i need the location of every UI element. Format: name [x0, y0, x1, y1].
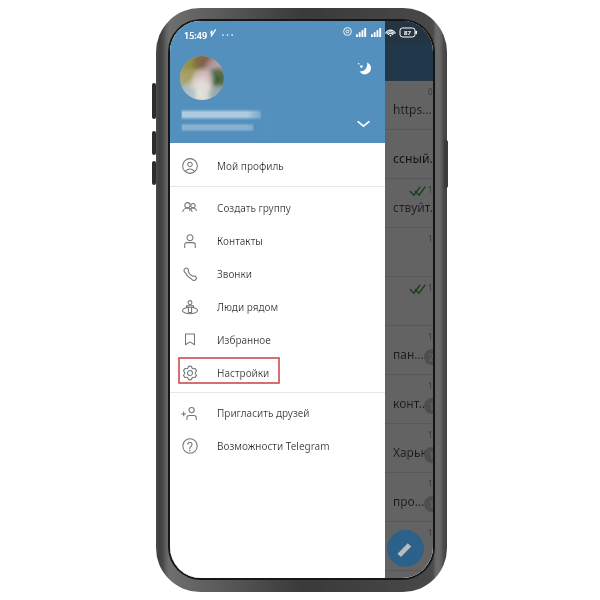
staticText: 1 [428, 527, 433, 538]
staticText: 2 [429, 351, 433, 363]
staticText: 1 [428, 233, 433, 244]
button[interactable]: Пригласить друзей [170, 396, 385, 429]
staticText: Звонки [217, 267, 253, 281]
button[interactable]: 1 [170, 179, 433, 228]
button[interactable]: Контакты [170, 224, 385, 257]
staticText: 15:49 [184, 29, 208, 41]
button[interactable]: Мой профиль [170, 149, 385, 182]
button[interactable]: 1 [170, 277, 433, 326]
staticText: 1 [429, 498, 433, 510]
staticText: 1 [428, 429, 433, 440]
staticText: Избранное [217, 333, 271, 347]
button[interactable]: 1 [170, 228, 433, 277]
button[interactable]: 1 [170, 375, 433, 424]
staticText: 1 [428, 380, 433, 391]
button[interactable]: Создать группу [170, 191, 385, 224]
staticText: пан… [393, 346, 424, 362]
button[interactable]: Profile photo [180, 56, 224, 100]
staticText: https… [393, 101, 432, 117]
staticText: 87 [404, 29, 411, 37]
button[interactable]: 0 [170, 81, 433, 130]
staticText: Контакты [217, 234, 263, 248]
button[interactable]: Избранное [170, 323, 385, 356]
staticText: конт… [393, 395, 429, 411]
button[interactable]: Настройки [170, 356, 385, 389]
staticText: 0 [428, 86, 433, 97]
staticText: 1 [428, 282, 433, 293]
button[interactable]: 1 [170, 522, 433, 571]
button[interactable]: New message [387, 530, 424, 567]
button[interactable]: 1 [170, 326, 433, 375]
staticText: Мой профиль [217, 159, 284, 173]
staticText: Возможности Telegram [217, 439, 330, 453]
button[interactable]: Возможности Telegram [170, 429, 385, 462]
button[interactable]: 1 [170, 473, 433, 522]
button[interactable]: Night mode [352, 56, 374, 78]
button[interactable]: Люди рядом [170, 290, 385, 323]
staticText: про… [393, 493, 425, 509]
staticText: 1 [429, 400, 433, 412]
button[interactable]: Expand accounts [353, 113, 373, 133]
staticText: Люди рядом [217, 300, 279, 314]
staticText: 1 [428, 184, 433, 195]
staticText: 1 [428, 331, 433, 342]
staticText: Пригласить друзей [217, 406, 310, 420]
button[interactable]: 1 [170, 424, 433, 473]
button[interactable]: ссный… [170, 130, 433, 179]
staticText: 1 [428, 478, 433, 489]
staticText: ствуйт… [393, 199, 433, 215]
staticText: 1 [429, 449, 433, 461]
staticText: Создать группу [217, 201, 291, 215]
staticText: ссный… [393, 150, 433, 166]
staticText: Настройки [217, 366, 270, 380]
staticText: Харьк… [393, 444, 433, 460]
button[interactable]: Звонки [170, 257, 385, 290]
